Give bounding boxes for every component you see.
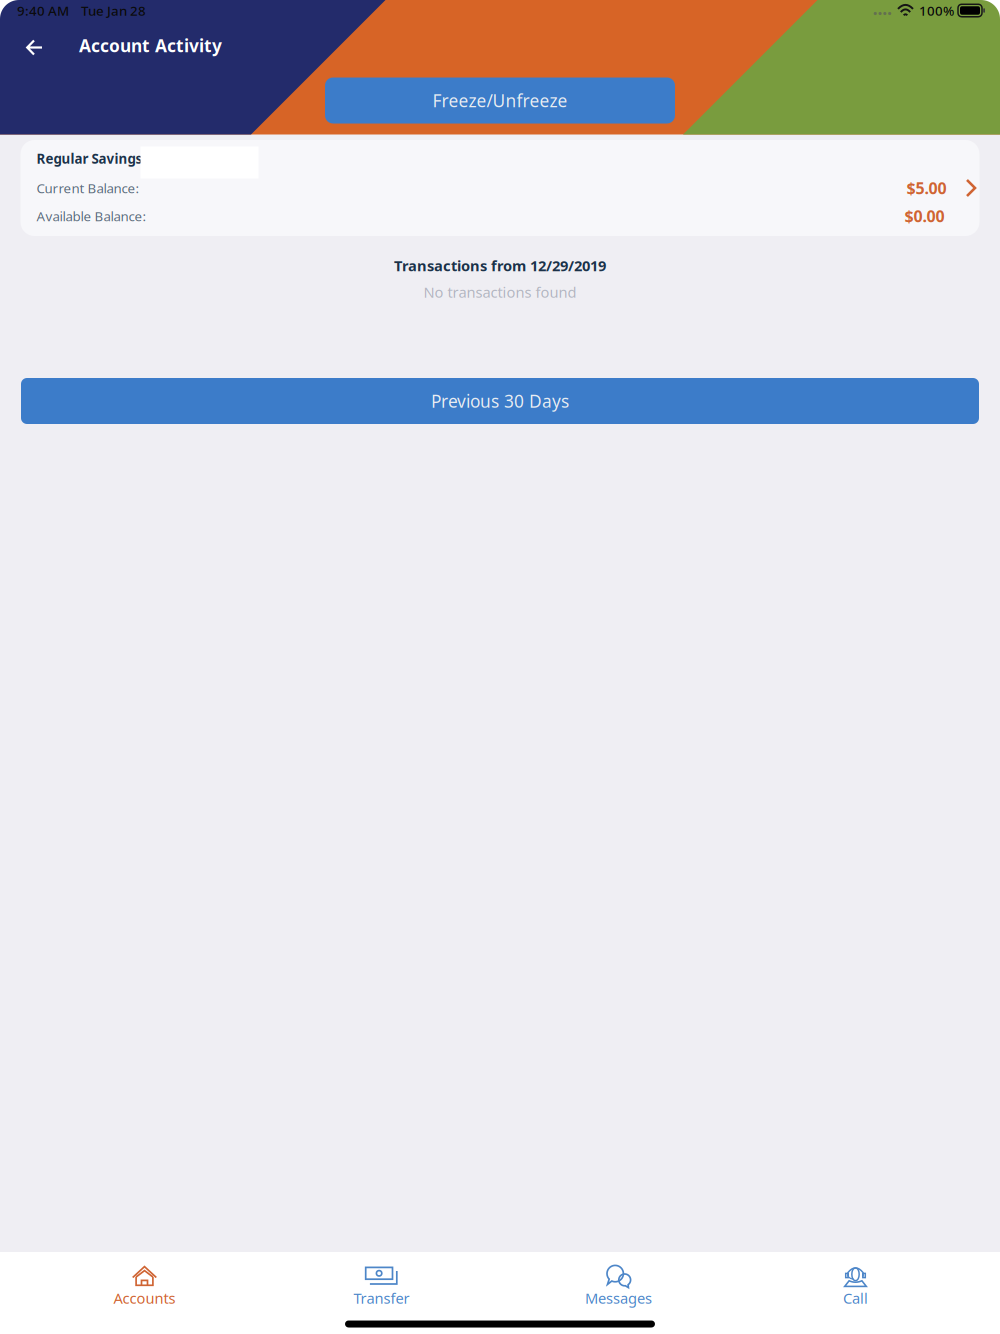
staticText: 9:40 AM xyxy=(17,2,69,19)
staticText: Previous 30 Days xyxy=(431,389,569,412)
staticText: Freeze/Unfreeze xyxy=(432,89,567,112)
button[interactable]: Back xyxy=(14,25,55,65)
staticText: Accounts xyxy=(113,1288,175,1308)
staticText: $0.00 xyxy=(904,205,944,227)
staticText: Available Balance: xyxy=(36,207,146,225)
staticText: $5.00 xyxy=(906,177,946,199)
button[interactable]: Call xyxy=(737,1249,974,1313)
staticText: Tue Jan 28 xyxy=(81,2,146,19)
button[interactable]: Regular Savings xyxy=(20,140,979,236)
button[interactable]: Freeze/Unfreeze xyxy=(325,77,675,123)
staticText: Current Balance: xyxy=(36,179,139,197)
staticText: No transactions found xyxy=(423,282,576,302)
button[interactable]: Transfer xyxy=(263,1249,500,1313)
staticText: Call xyxy=(843,1288,868,1308)
staticText: Account Activity xyxy=(79,34,222,57)
button[interactable]: Messages xyxy=(500,1249,737,1313)
staticText: Regular Savings xyxy=(36,150,142,167)
staticText: Messages xyxy=(585,1288,652,1308)
staticText: Transfer xyxy=(353,1288,409,1308)
button[interactable]: Previous 30 Days xyxy=(21,378,979,424)
staticText: 100% xyxy=(919,2,954,19)
staticText: Transactions from 12/29/2019 xyxy=(394,256,606,275)
button[interactable]: Accounts xyxy=(26,1249,263,1313)
